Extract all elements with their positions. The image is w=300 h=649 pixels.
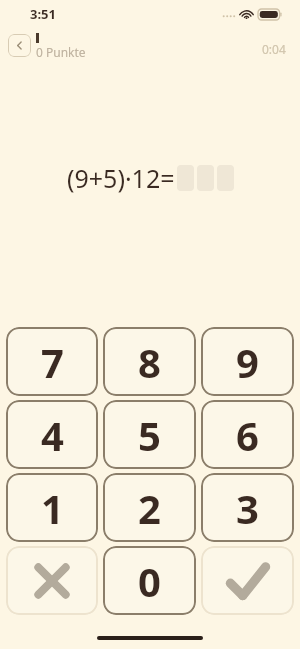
button[interactable]: 6 (201, 400, 294, 469)
staticText: 7 (41, 335, 64, 389)
staticText: 3:51 (30, 5, 56, 23)
staticText: 6 (236, 408, 259, 462)
staticText: (9+5)·12= (67, 161, 175, 195)
staticText: 0 (138, 554, 161, 608)
staticText: 3 (236, 481, 259, 535)
button[interactable]: 8 (103, 327, 196, 396)
staticText: 8 (138, 335, 161, 389)
staticText: 5 (138, 408, 161, 462)
staticText: 9 (236, 335, 259, 389)
button[interactable]: 4 (6, 400, 98, 469)
staticText: 4 (41, 408, 64, 462)
staticText: 0 Punkte (36, 44, 86, 60)
button[interactable]: Back (8, 34, 31, 57)
button[interactable]: 3 (201, 473, 294, 542)
button[interactable]: 5 (103, 400, 196, 469)
button[interactable]: 0 (103, 546, 196, 615)
button[interactable]: Clear (6, 546, 98, 615)
staticText: 2 (138, 481, 161, 535)
staticText: 1 (41, 481, 64, 535)
button[interactable]: 7 (6, 327, 98, 396)
button[interactable]: 2 (103, 473, 196, 542)
button[interactable]: Submit (201, 546, 294, 615)
button[interactable]: 1 (6, 473, 98, 542)
staticText: 0:04 (262, 41, 286, 57)
button[interactable]: 9 (201, 327, 294, 396)
